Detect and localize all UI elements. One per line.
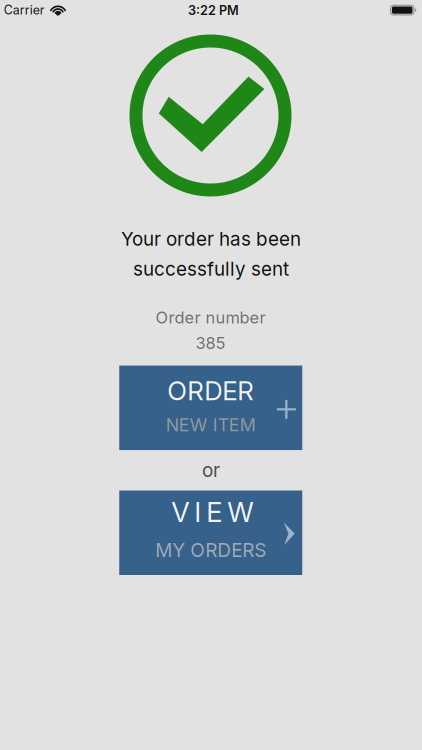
staticText: 3:22 PM bbox=[188, 3, 239, 18]
button[interactable]: ORDER bbox=[119, 366, 302, 450]
staticText: NEW ITEM bbox=[166, 414, 256, 436]
staticText: MY ORDERS bbox=[155, 539, 266, 562]
staticText: Your order has been bbox=[121, 228, 301, 250]
staticText: Order number bbox=[155, 308, 265, 327]
staticText: or bbox=[202, 458, 220, 481]
staticText: successfully sent bbox=[133, 258, 289, 280]
staticText: ORDER bbox=[167, 375, 254, 406]
staticText: 385 bbox=[195, 333, 225, 353]
button[interactable]: V I E W bbox=[119, 490, 302, 575]
staticText: Carrier bbox=[4, 3, 45, 18]
staticText: V I E W bbox=[171, 496, 253, 529]
